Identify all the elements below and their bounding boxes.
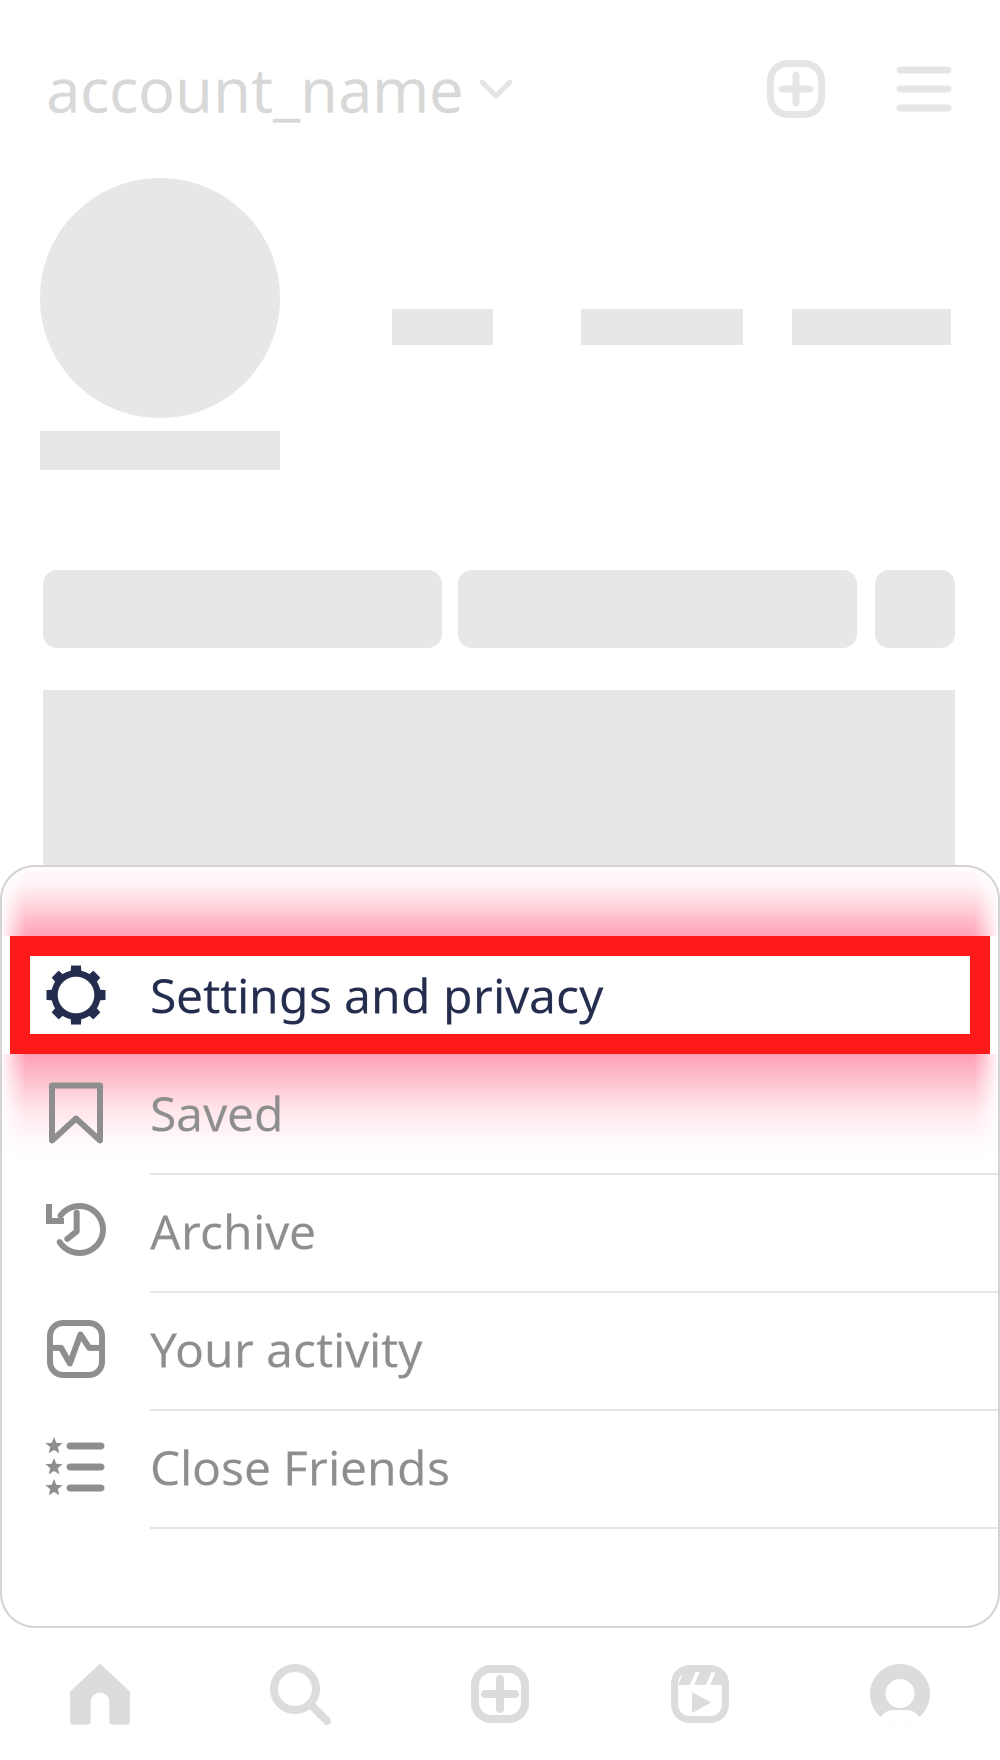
button[interactable]: Create xyxy=(400,1628,600,1760)
button[interactable]: Your activity xyxy=(0,1290,1000,1408)
button[interactable]: Menu xyxy=(877,34,971,144)
staticText: Saved xyxy=(150,1081,284,1145)
staticText: Settings and privacy xyxy=(150,963,603,1027)
button[interactable]: account_name xyxy=(0,34,510,144)
button[interactable]: Profile xyxy=(800,1628,1000,1760)
button[interactable]: Search xyxy=(200,1628,400,1760)
staticText: Your activity xyxy=(150,1317,422,1381)
button[interactable]: Reels xyxy=(600,1628,800,1760)
button[interactable]: Home xyxy=(0,1628,200,1760)
button[interactable]: Close Friends xyxy=(0,1408,1000,1526)
staticText: Archive xyxy=(150,1199,316,1263)
button[interactable]: Saved xyxy=(0,1054,1000,1172)
button[interactable]: Archive xyxy=(0,1172,1000,1290)
button[interactable]: Create xyxy=(749,34,843,144)
button[interactable]: Settings and privacy xyxy=(0,936,1000,1054)
staticText: Close Friends xyxy=(150,1435,450,1499)
staticText: account_name xyxy=(46,48,464,130)
